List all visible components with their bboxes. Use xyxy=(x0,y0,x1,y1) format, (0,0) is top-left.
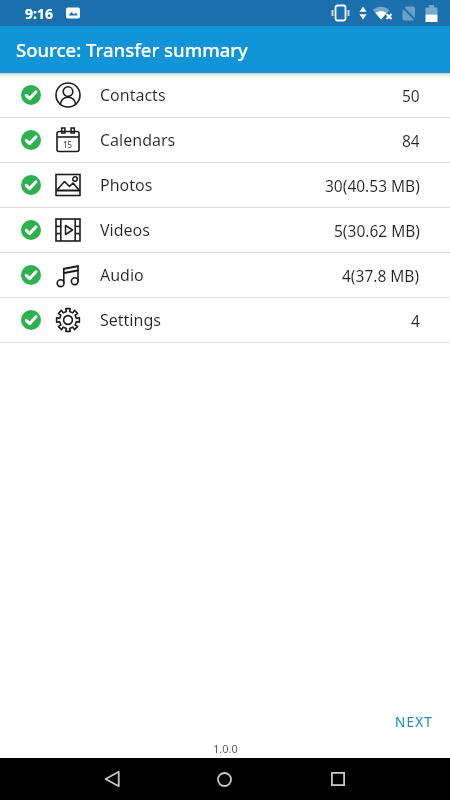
button[interactable]: Photos xyxy=(0,163,450,208)
button[interactable] xyxy=(281,758,394,800)
staticText: Calendars xyxy=(100,129,176,151)
staticText: Audio xyxy=(100,264,144,286)
staticText: Contacts xyxy=(100,84,166,106)
staticText: 4 xyxy=(411,310,420,331)
staticText: 4(37.8 MB) xyxy=(342,265,420,286)
staticText: Settings xyxy=(100,309,161,331)
staticText: 30(40.53 MB) xyxy=(325,175,420,196)
button[interactable]: Videos xyxy=(0,208,450,253)
button[interactable]: 15 xyxy=(0,118,450,163)
staticText: 1.0.0 xyxy=(213,741,238,756)
staticText: Source: Transfer summary xyxy=(16,37,248,62)
button[interactable]: Audio xyxy=(0,253,450,298)
staticText: 15 xyxy=(63,139,73,150)
staticText: Photos xyxy=(100,174,153,196)
button[interactable] xyxy=(56,758,168,800)
staticText: 84 xyxy=(402,130,420,151)
staticText: Videos xyxy=(100,219,150,241)
staticText: 5(30.62 MB) xyxy=(334,220,420,241)
button[interactable]: Settings xyxy=(0,298,450,343)
button[interactable]: NEXT xyxy=(391,709,437,735)
staticText: 50 xyxy=(402,85,420,106)
staticText: NEXT xyxy=(395,713,433,731)
staticText: 9:16 xyxy=(25,4,53,23)
button[interactable] xyxy=(168,758,281,800)
button[interactable]: Contacts xyxy=(0,73,450,118)
